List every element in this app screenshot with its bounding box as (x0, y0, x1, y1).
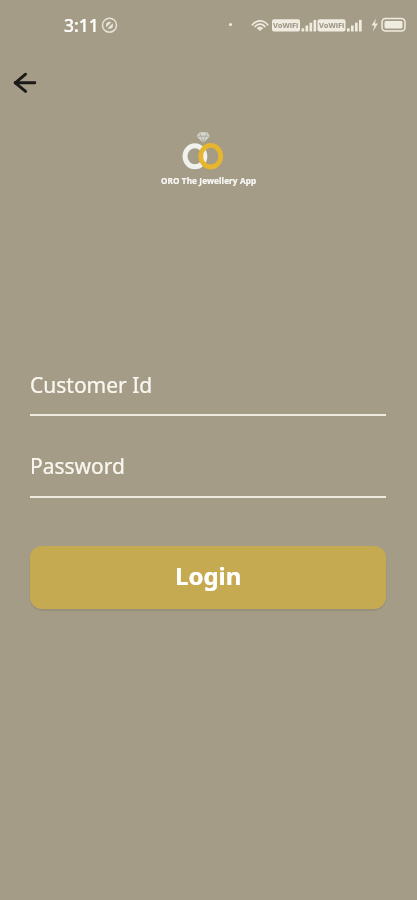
staticText: Login (175, 559, 242, 592)
button[interactable]: Back (2, 61, 46, 105)
staticText: VoWiFi (319, 20, 345, 30)
staticText: ORO The Jewellery App (161, 175, 257, 186)
button[interactable]: Password (30, 448, 386, 497)
staticText: VoWiFi (273, 20, 299, 30)
button[interactable]: Login (30, 546, 386, 609)
staticText: Password (30, 452, 125, 481)
staticText: 3:11 (64, 13, 99, 37)
button[interactable]: Customer Id (30, 367, 386, 415)
staticText: Customer Id (30, 371, 153, 400)
